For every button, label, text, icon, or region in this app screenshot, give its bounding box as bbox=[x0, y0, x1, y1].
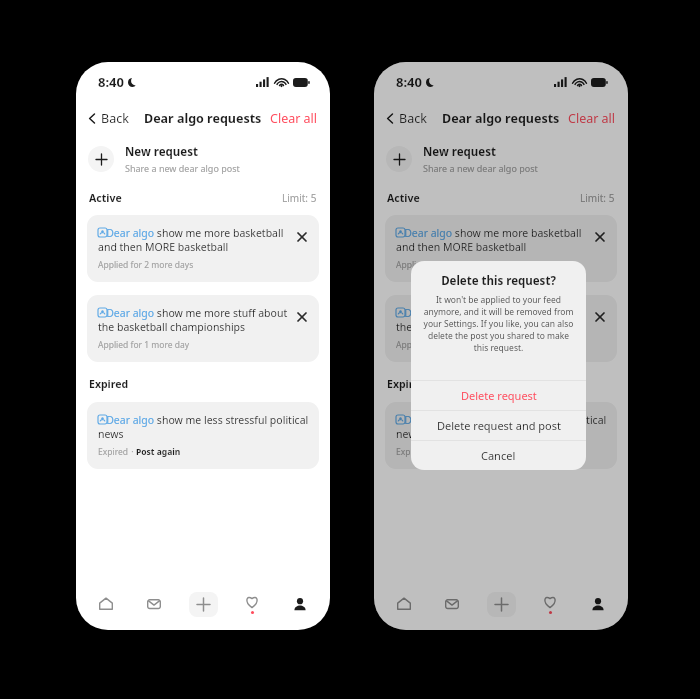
staticText: Dear algo show me more stuff about the b… bbox=[98, 306, 291, 334]
staticText: Dear algo show me more basketball and th… bbox=[396, 226, 589, 254]
button[interactable]: Dismiss request bbox=[589, 226, 611, 248]
button[interactable]: Activity bbox=[238, 590, 266, 618]
button[interactable]: Dear algo show me less stressful politic… bbox=[385, 402, 617, 469]
button[interactable]: Home bbox=[92, 590, 120, 618]
staticText: Clear all bbox=[270, 110, 318, 127]
button[interactable]: Create bbox=[189, 592, 218, 617]
staticText: Applied for 2 more days bbox=[98, 259, 194, 271]
staticText: Dear algo show me more stuff about the b… bbox=[396, 306, 589, 334]
button[interactable]: Delete request and post bbox=[411, 411, 586, 440]
button[interactable]: Clear all bbox=[258, 105, 330, 132]
button[interactable]: Dear algo show me more basketball and th… bbox=[87, 215, 319, 282]
staticText: Post again bbox=[136, 446, 181, 458]
staticText: Active bbox=[387, 191, 420, 205]
button[interactable]: Dear algo show me less stressful politic… bbox=[87, 402, 319, 469]
staticText: Delete this request? bbox=[441, 273, 556, 289]
staticText: Active bbox=[89, 191, 122, 205]
button[interactable]: Activity bbox=[536, 590, 564, 618]
staticText: Applied for 1 more day bbox=[396, 339, 488, 351]
button[interactable]: Home bbox=[390, 590, 418, 618]
button[interactable]: Delete request bbox=[411, 381, 586, 410]
staticText: Cancel bbox=[481, 448, 516, 463]
button[interactable]: Messages bbox=[438, 590, 466, 618]
staticText: Expired bbox=[89, 377, 129, 391]
staticText: Expired bbox=[98, 446, 129, 458]
button[interactable]: Profile bbox=[286, 590, 314, 618]
button[interactable]: Clear all bbox=[556, 105, 628, 132]
staticText: Dear algo show me less stressful politic… bbox=[98, 413, 313, 441]
button[interactable]: Post again bbox=[136, 446, 181, 458]
button[interactable]: New request bbox=[76, 140, 330, 178]
button[interactable]: Dear algo show me more basketball and th… bbox=[385, 215, 617, 282]
staticText: 8:40 bbox=[98, 73, 124, 91]
button[interactable]: New request bbox=[374, 140, 628, 178]
staticText: Dear algo show me less stressful politic… bbox=[396, 413, 611, 441]
button[interactable]: Dear algo show me more stuff about the b… bbox=[87, 295, 319, 362]
staticText: Delete request bbox=[461, 388, 537, 403]
staticText: Limit: 5 bbox=[580, 191, 615, 205]
staticText: Delete request and post bbox=[437, 418, 561, 433]
staticText: Applied for 2 more days bbox=[396, 259, 492, 271]
button[interactable]: Messages bbox=[140, 590, 168, 618]
button[interactable]: Create bbox=[487, 592, 516, 617]
staticText: Back bbox=[399, 110, 427, 127]
button[interactable]: Dismiss request bbox=[291, 226, 313, 248]
button[interactable]: Back bbox=[374, 105, 435, 132]
staticText: Dear algo show me more basketball and th… bbox=[98, 226, 291, 254]
staticText: Expired bbox=[387, 377, 427, 391]
staticText: Share a new dear algo post bbox=[125, 162, 240, 174]
button[interactable]: Back bbox=[76, 105, 137, 132]
staticText: It won't be applied to your feed anymore… bbox=[422, 294, 575, 354]
staticText: Dear algo requests bbox=[442, 110, 560, 127]
staticText: Share a new dear algo post bbox=[423, 162, 538, 174]
staticText: Dear algo requests bbox=[144, 110, 262, 127]
staticText: Back bbox=[101, 110, 129, 127]
staticText: 8:40 bbox=[396, 73, 422, 91]
button[interactable]: Dismiss request bbox=[291, 306, 313, 328]
staticText: · bbox=[129, 446, 136, 458]
button[interactable]: Dismiss request bbox=[589, 306, 611, 328]
button[interactable]: Profile bbox=[584, 590, 612, 618]
staticText: New request bbox=[125, 144, 198, 160]
staticText: Applied for 1 more day bbox=[98, 339, 190, 351]
button[interactable]: Dear algo show me more stuff about the b… bbox=[385, 295, 617, 362]
staticText: New request bbox=[423, 144, 496, 160]
staticText: Limit: 5 bbox=[282, 191, 317, 205]
staticText: Clear all bbox=[568, 110, 616, 127]
staticText: Expired bbox=[396, 446, 427, 458]
button[interactable]: Cancel bbox=[411, 441, 586, 470]
